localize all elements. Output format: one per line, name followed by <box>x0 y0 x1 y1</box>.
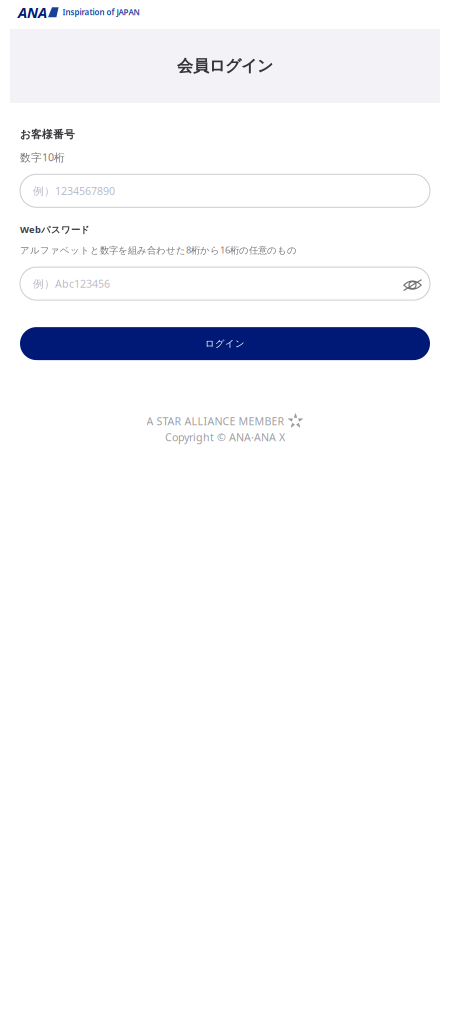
staticText: Webパスワード <box>20 223 90 236</box>
button[interactable]: ログイン <box>20 327 430 360</box>
staticText: ANA <box>18 2 47 22</box>
staticText: Inspiration of JAPAN <box>62 7 139 17</box>
button[interactable]: 例）1234567890 <box>20 174 430 207</box>
staticText: 会員ログイン <box>177 56 273 76</box>
staticText: ログイン <box>205 338 245 349</box>
staticText: A STAR ALLIANCE MEMBER <box>146 414 284 428</box>
staticText: 数字10桁 <box>20 150 65 164</box>
staticText: 例）1234567890 <box>33 184 115 198</box>
button[interactable]: ANA <box>0 0 450 29</box>
button[interactable]: 例）Abc123456 <box>20 267 430 300</box>
button[interactable]: パスワードを表示 <box>395 267 430 300</box>
staticText: 例）Abc123456 <box>33 276 110 291</box>
staticText: Copyright © ANA·ANA X <box>165 430 285 444</box>
staticText: お客様番号 <box>20 128 75 141</box>
staticText: アルファベットと数字を組み合わせた8桁から16桁の任意のもの <box>20 244 297 256</box>
